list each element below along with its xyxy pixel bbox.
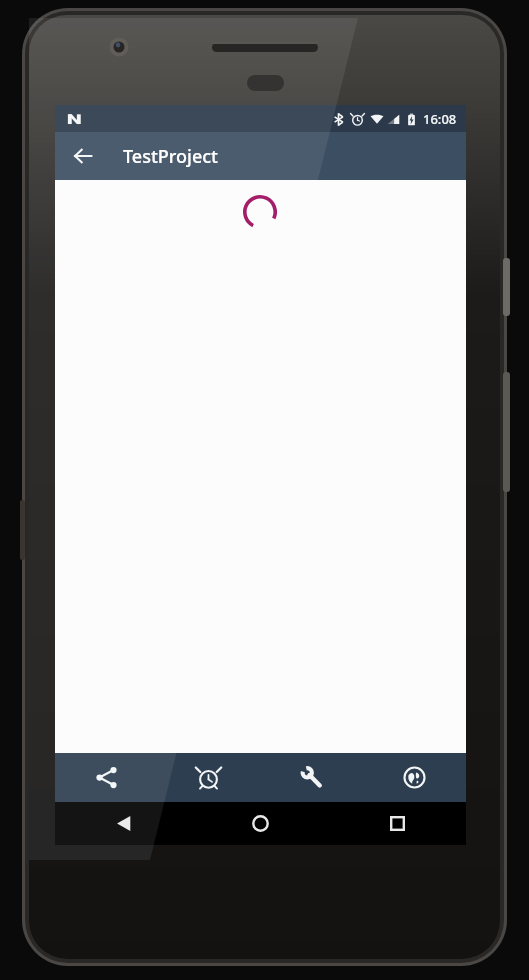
button[interactable]: Browser (363, 753, 466, 802)
staticText: 16:08 (423, 110, 457, 128)
button[interactable]: Recent apps (329, 802, 466, 845)
button[interactable]: Settings (260, 753, 363, 802)
button[interactable]: Alarm (157, 753, 260, 802)
staticText: TestProject (123, 144, 218, 169)
button[interactable]: Home (192, 802, 329, 845)
button[interactable]: Share (55, 753, 157, 802)
button[interactable]: Navigate up (63, 136, 103, 176)
button[interactable]: Back (55, 802, 192, 845)
